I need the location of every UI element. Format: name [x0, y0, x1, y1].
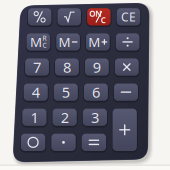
button[interactable]: On, Clear [0, 0, 170, 170]
staticText: 3 [91, 107, 99, 127]
staticText: C [101, 15, 106, 25]
button[interactable]: 8 [0, 0, 170, 170]
button[interactable]: Divide [0, 0, 170, 170]
staticText: 8 [63, 57, 71, 77]
button[interactable]: Memory minus [0, 0, 170, 170]
button[interactable]: Plus [0, 0, 170, 170]
button[interactable]: 9 [0, 0, 170, 170]
staticText: 1 [30, 107, 38, 127]
button[interactable]: 5 [0, 0, 170, 170]
staticText: 6 [92, 82, 100, 102]
button[interactable]: Decimal point [0, 0, 170, 170]
button[interactable]: Square root [0, 0, 170, 170]
button[interactable]: 3 [0, 0, 170, 170]
button[interactable]: 6 [0, 0, 170, 170]
button[interactable]: Memory plus [0, 0, 170, 170]
staticText: 2 [61, 107, 69, 127]
button[interactable]: 4 [0, 0, 170, 170]
staticText: R [43, 34, 47, 43]
button[interactable]: Minus [0, 0, 170, 170]
staticText: ON [89, 8, 101, 19]
staticText: M [58, 33, 70, 51]
staticText: 5 [62, 82, 70, 102]
button[interactable]: Memory recall clear [0, 0, 170, 170]
button[interactable]: 1 [0, 0, 170, 170]
staticText: M [88, 33, 100, 51]
button[interactable]: Multiply [0, 0, 170, 170]
staticText: 4 [32, 82, 40, 102]
button[interactable]: 2 [0, 0, 170, 170]
button[interactable]: CE [0, 0, 170, 170]
staticText: C [43, 41, 47, 50]
button[interactable]: 7 [0, 0, 170, 170]
staticText: 7 [33, 57, 41, 77]
staticText: M [30, 33, 42, 51]
button[interactable]: Percent [0, 0, 170, 170]
staticText: CE [121, 9, 136, 25]
button[interactable]: Zero [0, 0, 170, 170]
button[interactable]: Equals [0, 0, 170, 170]
staticText: 9 [93, 57, 101, 77]
